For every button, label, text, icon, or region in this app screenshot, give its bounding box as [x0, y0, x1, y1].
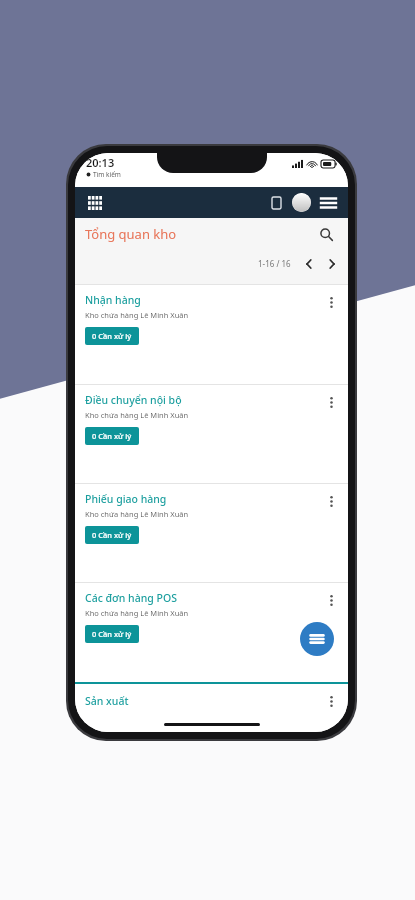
button[interactable]: More options	[322, 692, 340, 710]
button[interactable]: 0 Cần xử lý	[85, 526, 139, 544]
button[interactable]: Previous page	[300, 255, 317, 272]
button[interactable]: Điều chuyển nội bộ	[75, 385, 348, 484]
button[interactable]: Account	[292, 193, 311, 212]
button[interactable]: Apps grid	[84, 192, 106, 214]
staticText: Nhận hàng	[85, 293, 141, 307]
button[interactable]: 0 Cần xử lý	[85, 625, 139, 643]
staticText: 0 Cần xử lý	[92, 530, 132, 540]
staticText: Tìm kiếm	[93, 170, 121, 179]
staticText: 0 Cần xử lý	[92, 629, 132, 639]
staticText: 0 Cần xử lý	[92, 431, 132, 441]
staticText: 1-16 / 16	[258, 258, 291, 269]
button[interactable]: 0 Cần xử lý	[85, 427, 139, 445]
button[interactable]: Phiếu giao hàng	[75, 484, 348, 583]
button[interactable]: Documents	[266, 193, 286, 213]
button[interactable]: Menu actions	[300, 622, 334, 656]
staticText: 0 Cần xử lý	[92, 331, 132, 341]
button[interactable]: 0 Cần xử lý	[85, 327, 139, 345]
button[interactable]: More options	[322, 492, 340, 510]
button[interactable]: More options	[322, 293, 340, 311]
button[interactable]: Open menu	[317, 192, 339, 214]
staticText: Kho chứa hàng Lê Minh Xuân	[85, 410, 189, 420]
button[interactable]: Các đơn hàng POS	[75, 583, 348, 682]
staticText: Phiếu giao hàng	[85, 492, 167, 506]
staticText: Sản xuất	[85, 694, 129, 708]
staticText: Tổng quan kho	[85, 225, 177, 243]
button[interactable]: More options	[322, 393, 340, 411]
staticText: Kho chứa hàng Lê Minh Xuân	[85, 310, 189, 320]
button[interactable]: Search	[314, 222, 338, 246]
button[interactable]: Next page	[323, 255, 340, 272]
staticText: Kho chứa hàng Lê Minh Xuân	[85, 509, 189, 519]
button[interactable]: Sản xuất	[85, 692, 340, 710]
staticText: Điều chuyển nội bộ	[85, 393, 182, 407]
staticText: 20:13	[86, 155, 115, 170]
button[interactable]: Nhận hàng	[75, 285, 348, 385]
button[interactable]: More options	[322, 591, 340, 609]
staticText: Kho chứa hàng Lê Minh Xuân	[85, 608, 189, 618]
staticText: Các đơn hàng POS	[85, 591, 177, 605]
